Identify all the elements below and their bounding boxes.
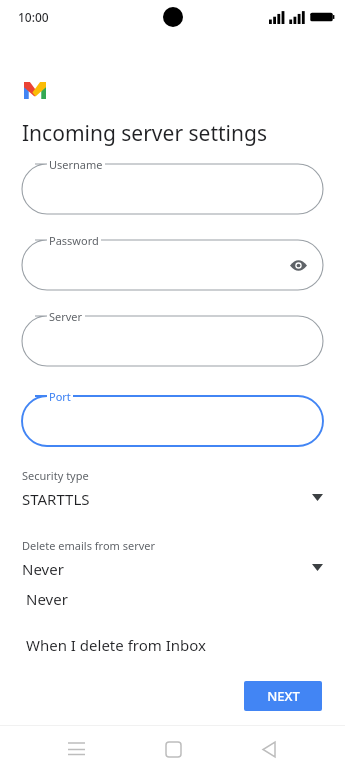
- button[interactable]: NEXT: [244, 681, 322, 711]
- button[interactable]: Username: [22, 164, 323, 214]
- staticText: STARTTLS: [22, 489, 90, 509]
- staticText: Security type: [22, 468, 89, 483]
- button[interactable]: Security type: [0, 468, 345, 516]
- staticText: Delete emails from server: [22, 538, 156, 553]
- button[interactable]: Never: [14, 576, 283, 622]
- staticText: Username: [49, 157, 103, 172]
- button[interactable]: Home: [153, 729, 193, 769]
- staticText: Port: [49, 389, 71, 404]
- staticText: NEXT: [267, 687, 300, 705]
- button[interactable]: Password: [22, 240, 323, 290]
- staticText: Incoming server settings: [22, 119, 267, 148]
- button[interactable]: Delete emails from server: [0, 538, 345, 586]
- button[interactable]: Back: [249, 729, 289, 769]
- button[interactable]: Server: [22, 316, 323, 366]
- staticText: Password: [49, 233, 99, 248]
- button[interactable]: Recent apps: [56, 729, 96, 769]
- button[interactable]: When I delete from Inbox: [14, 622, 283, 668]
- staticText: Never: [22, 559, 64, 579]
- button[interactable]: Show password: [287, 254, 309, 276]
- button[interactable]: Port: [22, 396, 323, 446]
- staticText: When I delete from Inbox: [26, 635, 206, 655]
- staticText: Never: [26, 589, 68, 609]
- staticText: 10:00: [18, 9, 49, 25]
- staticText: Server: [49, 309, 83, 324]
